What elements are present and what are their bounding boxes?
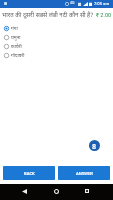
button[interactable]: Recent apps [79, 184, 95, 200]
button[interactable]: यमुना [0, 33, 113, 42]
staticText: ₹ 2.00 [96, 12, 112, 19]
staticText: 7:05 am [94, 1, 110, 6]
staticText: 4G [70, 1, 75, 5]
staticText: यमुना [11, 34, 21, 41]
staticText: BACK [24, 171, 35, 176]
button[interactable]: कावेरी [0, 42, 113, 51]
button[interactable]: Back [16, 184, 32, 200]
button[interactable]: गंगा [0, 24, 113, 33]
staticText: 8 [92, 142, 97, 150]
staticText: गंगा [11, 25, 18, 32]
button[interactable]: ANSWER [58, 166, 110, 180]
button[interactable]: गोदावरी [0, 51, 113, 60]
staticText: ANSWER [76, 171, 93, 176]
staticText: गोदावरी [11, 52, 25, 59]
button[interactable]: BACK [3, 166, 55, 180]
staticText: कावेरी [11, 43, 22, 50]
button[interactable]: Home [48, 184, 64, 200]
button[interactable]: 8 [89, 140, 100, 151]
staticText: भारत की दूसरी सबसे लंबी नदी कौन सी है? [2, 11, 94, 19]
